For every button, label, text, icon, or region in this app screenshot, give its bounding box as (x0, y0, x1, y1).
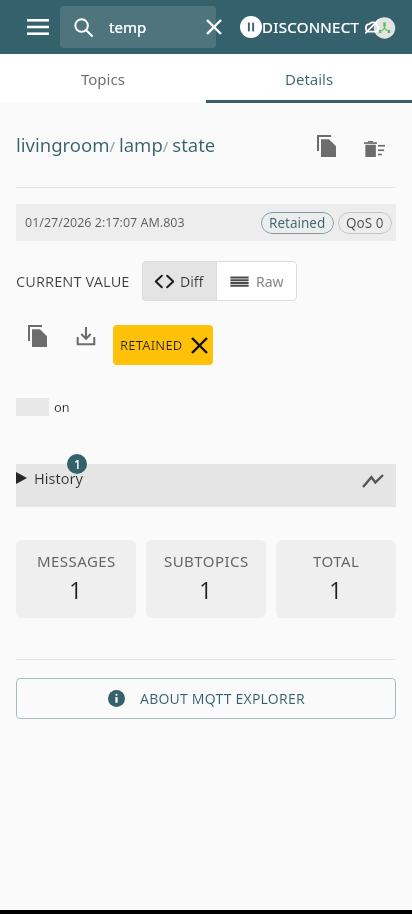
button[interactable]: Raw (217, 261, 297, 301)
button[interactable]: Delete topic (354, 124, 394, 164)
staticText: 1 (69, 574, 83, 605)
staticText: Topics (81, 69, 125, 89)
staticText: TOTAL (313, 551, 360, 571)
button[interactable]: temp (60, 6, 216, 48)
button[interactable]: DISCONNECT (240, 5, 360, 49)
button[interactable]: Show chart (361, 469, 385, 493)
staticText: Details (285, 69, 334, 89)
button[interactable]: QoS 0 (346, 212, 384, 234)
button[interactable]: Copy topic (306, 124, 346, 164)
button[interactable]: Diff (142, 261, 216, 301)
button[interactable]: ABOUT MQTT EXPLORER (16, 678, 396, 719)
staticText: RETAINED (120, 336, 183, 354)
staticText: QoS 0 (346, 214, 384, 232)
button[interactable]: Download value (77, 327, 115, 357)
staticText: livingroom/ lamp/ state (16, 132, 216, 157)
staticText: Retained (269, 214, 326, 232)
staticText: 1 (329, 574, 343, 605)
staticText: 01/27/2026 2:17:07 AM.803 (25, 214, 185, 231)
staticText: MESSAGES (37, 551, 116, 571)
button[interactable]: Details (206, 54, 412, 103)
button[interactable]: Account (356, 1, 408, 53)
staticText: 1 (74, 456, 81, 472)
button[interactable]: RETAINED (113, 325, 213, 365)
button[interactable]: MESSAGES (16, 540, 136, 618)
staticText: Diff (180, 272, 204, 291)
staticText: Raw (256, 272, 284, 291)
staticText: ABOUT MQTT EXPLORER (140, 689, 305, 708)
button[interactable]: History (16, 464, 396, 507)
button[interactable]: SUBTOPICS (146, 540, 266, 618)
staticText: temp (109, 17, 147, 37)
staticText: on (54, 398, 70, 416)
button[interactable]: Retained (269, 212, 326, 234)
staticText: SUBTOPICS (164, 551, 249, 571)
staticText: History (34, 468, 83, 488)
button[interactable]: Menu (18, 7, 58, 47)
staticText: 1 (199, 574, 213, 605)
button[interactable]: TOTAL (276, 540, 396, 618)
staticText: CURRENT VALUE (16, 271, 130, 291)
button[interactable]: Topics (0, 54, 206, 103)
button[interactable]: Clear search (194, 7, 234, 47)
button[interactable]: Copy value (28, 325, 68, 357)
staticText: DISCONNECT (262, 17, 360, 37)
